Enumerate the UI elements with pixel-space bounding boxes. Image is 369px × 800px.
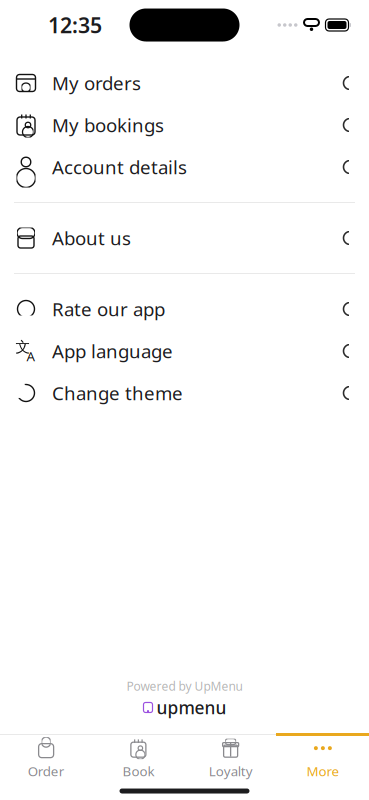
button[interactable]: My orders	[0, 62, 369, 104]
staticText: Rate our app	[52, 297, 165, 321]
button[interactable]: Rate our app	[0, 288, 369, 330]
staticText: Loyalty	[209, 762, 253, 780]
staticText: My bookings	[52, 113, 164, 137]
staticText: App language	[52, 339, 173, 363]
staticText: Powered by UpMenu	[126, 678, 242, 694]
staticText: 文	[15, 338, 30, 356]
button[interactable]: 文	[0, 330, 369, 372]
button[interactable]: About us	[0, 217, 369, 259]
button[interactable]: Loyalty	[184, 736, 277, 782]
staticText: Order	[28, 762, 65, 780]
button[interactable]: Change theme	[0, 372, 369, 414]
staticText: A	[26, 347, 35, 365]
staticText: 12:35	[48, 11, 102, 39]
button[interactable]: Account details	[0, 146, 369, 188]
staticText: Book	[122, 762, 154, 780]
staticText: Change theme	[52, 381, 183, 405]
staticText: upmenu	[156, 696, 226, 719]
button[interactable]: Order	[0, 736, 92, 782]
staticText: About us	[52, 226, 131, 250]
button[interactable]: More	[277, 736, 369, 782]
staticText: More	[306, 762, 339, 780]
staticText: Account details	[52, 155, 187, 179]
button[interactable]: My bookings	[0, 104, 369, 146]
button[interactable]: Book	[92, 736, 184, 782]
staticText: My orders	[52, 71, 141, 95]
